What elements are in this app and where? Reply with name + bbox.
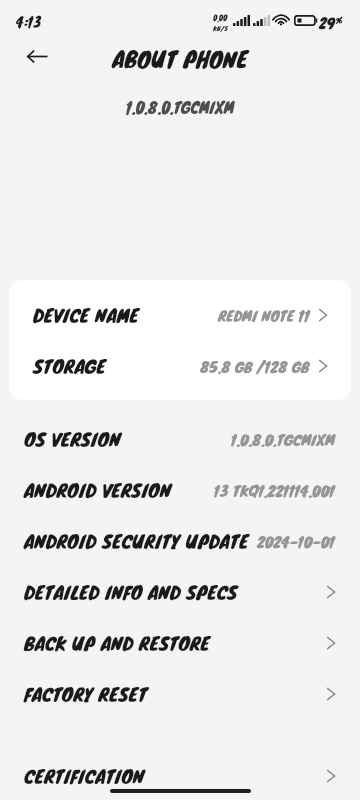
staticText: STORAGE [33,352,106,380]
staticText: BACK UP AND RESTORE [24,629,210,657]
staticText: ANDROID VERSION [24,476,172,504]
button[interactable]: ANDROID SECURITY UPDATE [0,515,360,566]
staticText: 13 TKQ1.221114.001 [214,479,335,501]
staticText: ANDROID SECURITY UPDATE [24,527,249,555]
staticText: 1.0.8.0.TGCMIXM [231,428,335,450]
staticText: 29 [319,12,336,34]
staticText: DETAILED INFO AND SPECS [24,578,238,606]
button[interactable]: FACTORY RESET [0,668,360,719]
staticText: FACTORY RESET [24,680,148,708]
staticText: DEVICE NAME [33,301,139,329]
staticText: KB/S [213,23,228,33]
staticText: 2024-10-01 [257,530,335,552]
staticText: OS VERSION [24,425,121,453]
staticText: % [335,14,343,26]
button[interactable]: OS VERSION [0,413,360,464]
staticText: REDMI NOTE 11 [218,304,310,326]
staticText: 4:13 [16,12,42,32]
button[interactable]: BACK UP AND RESTORE [0,617,360,668]
staticText: 0.00 [213,13,228,24]
button[interactable]: DETAILED INFO AND SPECS [0,566,360,617]
staticText: 1.0.8.0.TGCMIXM [0,96,360,119]
button[interactable]: ANDROID VERSION [0,464,360,515]
button[interactable]: DEVICE NAME [9,289,351,340]
button[interactable]: CERTIFICATION [0,750,360,800]
staticText: CERTIFICATION [24,762,145,790]
button[interactable]: Back [17,38,57,74]
button[interactable]: STORAGE [9,340,351,391]
staticText: 85.8 GB /128 GB [200,355,310,377]
staticText: ABOUT PHONE [0,42,360,76]
